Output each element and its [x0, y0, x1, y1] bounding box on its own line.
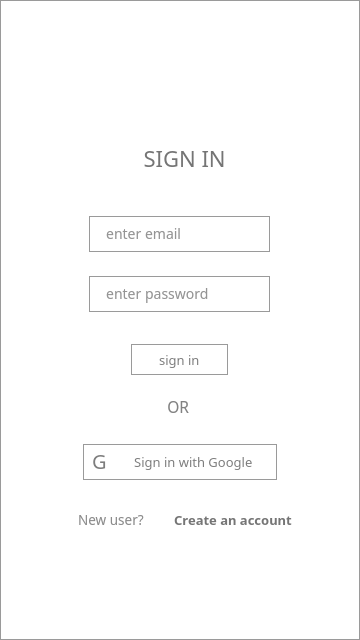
- staticText: OR: [167, 396, 189, 417]
- staticText: enter email: [106, 224, 181, 243]
- staticText: enter password: [106, 284, 209, 303]
- staticText: G: [92, 448, 107, 475]
- button[interactable]: enter email: [89, 216, 270, 252]
- staticText: New user?: [78, 511, 144, 529]
- staticText: SIGN IN: [143, 143, 226, 173]
- button[interactable]: Create an account: [174, 511, 292, 529]
- staticText: Create an account: [174, 511, 292, 529]
- button[interactable]: Google logo: [83, 444, 277, 480]
- button[interactable]: sign in: [131, 344, 228, 375]
- staticText: Sign in with Google: [134, 453, 253, 471]
- staticText: sign in: [159, 351, 200, 369]
- other: Google logo: [83, 448, 116, 475]
- button[interactable]: enter password: [89, 276, 270, 312]
